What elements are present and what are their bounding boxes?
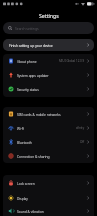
staticText: Sound & vibration (17, 209, 44, 213)
button[interactable]: Display (3, 190, 94, 205)
staticText: MIUI Global 12.0.9 (59, 59, 85, 63)
button[interactable]: Search settings (3, 22, 94, 34)
staticText: System apps updater (17, 73, 49, 77)
button[interactable]: Finish setting up your device (3, 39, 94, 51)
staticText: SIM cards & mobile networks (17, 112, 61, 116)
staticText: Settings (39, 12, 59, 19)
staticText: Finish setting up your device (9, 43, 53, 48)
button[interactable]: Sound & vibration (3, 205, 94, 216)
button[interactable]: Security status (3, 82, 94, 96)
button[interactable]: About phone (3, 54, 94, 68)
staticText: Display (17, 196, 28, 200)
button[interactable]: Bluetooth (3, 135, 94, 149)
staticText: Wi-Fi (17, 126, 25, 130)
button[interactable]: SIM cards & mobile networks (3, 107, 94, 121)
staticText: Lock screen (17, 181, 35, 185)
staticText: About phone (17, 59, 37, 63)
staticText: Off (80, 140, 85, 144)
button[interactable]: Connection & sharing (3, 149, 94, 163)
staticText: Bluetooth (17, 140, 32, 144)
button[interactable]: System apps updater (3, 68, 94, 82)
staticText: Security status (17, 87, 39, 91)
staticText: xfinity (76, 126, 85, 130)
button[interactable]: Wi-Fi (3, 121, 94, 135)
button[interactable]: Lock screen (3, 175, 94, 190)
staticText: Connection & sharing (17, 154, 50, 158)
staticText: Search settings (15, 26, 39, 31)
